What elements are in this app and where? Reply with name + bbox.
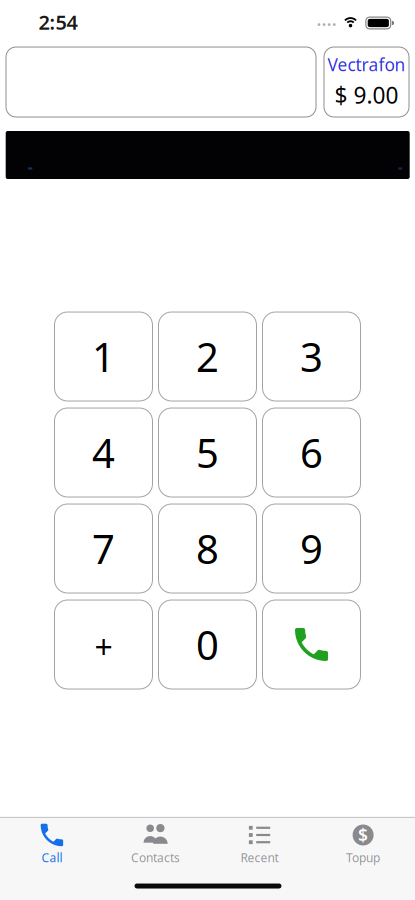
staticText: 7 bbox=[92, 522, 115, 575]
staticText: Vectrafon bbox=[327, 53, 405, 76]
staticText: 0 bbox=[196, 618, 219, 671]
staticText: 3 bbox=[300, 330, 323, 383]
button[interactable]: Call bbox=[0, 816, 103, 878]
button[interactable]: 8 bbox=[158, 504, 256, 593]
button[interactable]: 5 bbox=[158, 408, 256, 497]
staticText: 5 bbox=[196, 426, 219, 479]
button[interactable]: 0 bbox=[158, 600, 256, 689]
staticText: 2 bbox=[196, 330, 219, 383]
button[interactable]: 1 bbox=[54, 312, 152, 401]
staticText: $ bbox=[358, 823, 368, 846]
staticText: Call bbox=[41, 849, 62, 865]
staticText: Topup bbox=[346, 849, 380, 865]
staticText: 6 bbox=[300, 426, 323, 479]
button[interactable]: 6 bbox=[262, 408, 360, 497]
staticText: 9 bbox=[300, 522, 323, 575]
button[interactable]: Vectrafon bbox=[324, 47, 409, 117]
staticText: 2:54 bbox=[38, 9, 77, 35]
button[interactable]: 2 bbox=[158, 312, 256, 401]
staticText: 4 bbox=[92, 426, 115, 479]
button[interactable]: $ bbox=[312, 816, 415, 878]
button[interactable]: + bbox=[54, 600, 152, 689]
button[interactable]: 9 bbox=[262, 504, 360, 593]
button[interactable]: 4 bbox=[54, 408, 152, 497]
button[interactable]: 3 bbox=[262, 312, 360, 401]
staticText: + bbox=[94, 625, 112, 668]
button[interactable]: 7 bbox=[54, 504, 152, 593]
staticText: Recent bbox=[240, 849, 278, 865]
button[interactable]: Contacts bbox=[104, 816, 207, 878]
staticText: $ 9.00 bbox=[334, 80, 398, 110]
button[interactable]: Call bbox=[262, 600, 360, 689]
button[interactable]: Recent bbox=[208, 816, 311, 878]
staticText: 1 bbox=[92, 330, 115, 383]
staticText: 8 bbox=[196, 522, 219, 575]
staticText: Contacts bbox=[131, 849, 180, 865]
